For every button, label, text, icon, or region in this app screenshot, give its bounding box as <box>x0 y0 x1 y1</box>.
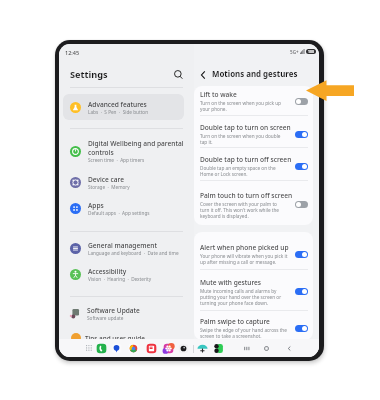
button[interactable]: Double tap to turn off screen <box>194 153 313 179</box>
staticText: Language and keyboard · Date and time <box>88 250 179 256</box>
staticText: 100 <box>308 49 314 54</box>
button[interactable]: Switch on <box>295 325 308 332</box>
staticText: 5G+ <box>290 49 299 55</box>
button[interactable]: Device care <box>63 169 184 195</box>
button[interactable]: Apps <box>84 343 94 353</box>
staticText: Your phone will vibrate when you pick it <box>200 253 288 259</box>
button[interactable]: Apps <box>63 195 184 221</box>
staticText: Home or Lock screen. <box>200 171 248 177</box>
staticText: Palm swipe to capture <box>200 317 270 326</box>
button[interactable]: Software Update <box>63 300 190 326</box>
button[interactable]: Switch on <box>295 131 308 138</box>
button[interactable]: Messages <box>111 343 122 354</box>
button[interactable]: Chrome <box>128 343 139 354</box>
staticText: Accessibility <box>88 267 127 276</box>
staticText: Double tap an empty space on the <box>200 165 276 171</box>
staticText: Tips and user guide <box>85 334 145 343</box>
button[interactable]: Recent <box>213 343 224 354</box>
staticText: Advanced features <box>88 100 147 109</box>
staticText: Storage · Memory <box>88 184 130 190</box>
staticText: Device care <box>88 175 124 184</box>
button[interactable]: Back <box>284 343 295 354</box>
button[interactable]: Phone <box>96 343 107 354</box>
button[interactable]: Switch off <box>295 98 308 105</box>
staticText: up after missing a call or message. <box>200 259 277 265</box>
staticText: turn it off. This won't work while the <box>200 207 279 213</box>
staticText: putting your hand over the screen or <box>200 294 282 300</box>
staticText: Mute with gestures <box>200 278 262 287</box>
staticText: keyboard is displayed. <box>200 213 249 219</box>
staticText: Settings <box>70 68 108 81</box>
button[interactable]: Switch on <box>295 288 308 295</box>
staticText: Turn on the screen when you double <box>200 133 281 139</box>
button[interactable]: Switch off <box>295 201 308 208</box>
staticText: Palm touch to turn off screen <box>200 191 293 200</box>
button[interactable]: Home <box>261 343 272 354</box>
staticText: 12:45 <box>65 49 80 56</box>
staticText: controls <box>88 148 114 157</box>
staticText: Default apps · App settings <box>88 210 150 216</box>
staticText: Alert when phone picked up <box>200 243 289 252</box>
staticText: Motions and gestures <box>212 69 298 80</box>
staticText: Double tap to turn off screen <box>200 155 292 164</box>
button[interactable]: Gallery <box>163 343 174 354</box>
staticText: Lift to wake <box>200 90 237 99</box>
staticText: Mute incoming calls and alarms by <box>200 288 277 294</box>
staticText: General management <box>88 241 157 250</box>
button[interactable]: Switch on <box>295 163 308 170</box>
button[interactable]: Digital Wellbeing and parental <box>63 135 190 167</box>
staticText: screen to take a screenshot. <box>200 333 262 339</box>
staticText: Vision · Hearing · Dexterity <box>88 276 152 282</box>
staticText: Screen time · App timers <box>88 157 145 163</box>
button[interactable]: Palm swipe to capture <box>194 315 313 341</box>
staticText: Turn on the screen when you pick up <box>200 100 281 106</box>
button[interactable]: Advanced features <box>63 94 184 120</box>
staticText: Labs · S Pen · Side button <box>88 109 149 115</box>
staticText: your phone. <box>200 106 227 112</box>
button[interactable]: Weather <box>197 343 208 354</box>
staticText: Apps <box>88 201 104 210</box>
staticText: Software update <box>87 315 124 321</box>
staticText: Cover the screen with your palm to <box>200 201 277 207</box>
button[interactable]: Switch on <box>295 251 308 258</box>
button[interactable]: Double tap to turn on screen <box>194 121 313 147</box>
staticText: Software Update <box>87 306 140 315</box>
button[interactable]: Notes <box>146 343 157 354</box>
button[interactable]: Mute with gestures <box>194 275 313 308</box>
button[interactable]: Search <box>171 67 185 81</box>
button[interactable]: Camera <box>178 343 189 354</box>
button[interactable]: Palm touch to turn off screen <box>194 188 313 221</box>
staticText: Double tap to turn on screen <box>200 123 291 132</box>
button[interactable]: Lift to wake <box>194 88 313 114</box>
button[interactable]: Back <box>196 68 209 81</box>
staticText: turning your phone face down. <box>200 300 269 306</box>
button[interactable]: Recents <box>241 343 252 354</box>
staticText: Swipe the edge of your hand across the <box>200 327 287 333</box>
staticText: Digital Wellbeing and parental <box>88 139 184 148</box>
staticText: tap it. <box>200 139 213 145</box>
button[interactable]: Alert when phone picked up <box>194 241 313 267</box>
button[interactable]: Accessibility <box>63 261 184 287</box>
button[interactable]: General management <box>63 235 184 261</box>
